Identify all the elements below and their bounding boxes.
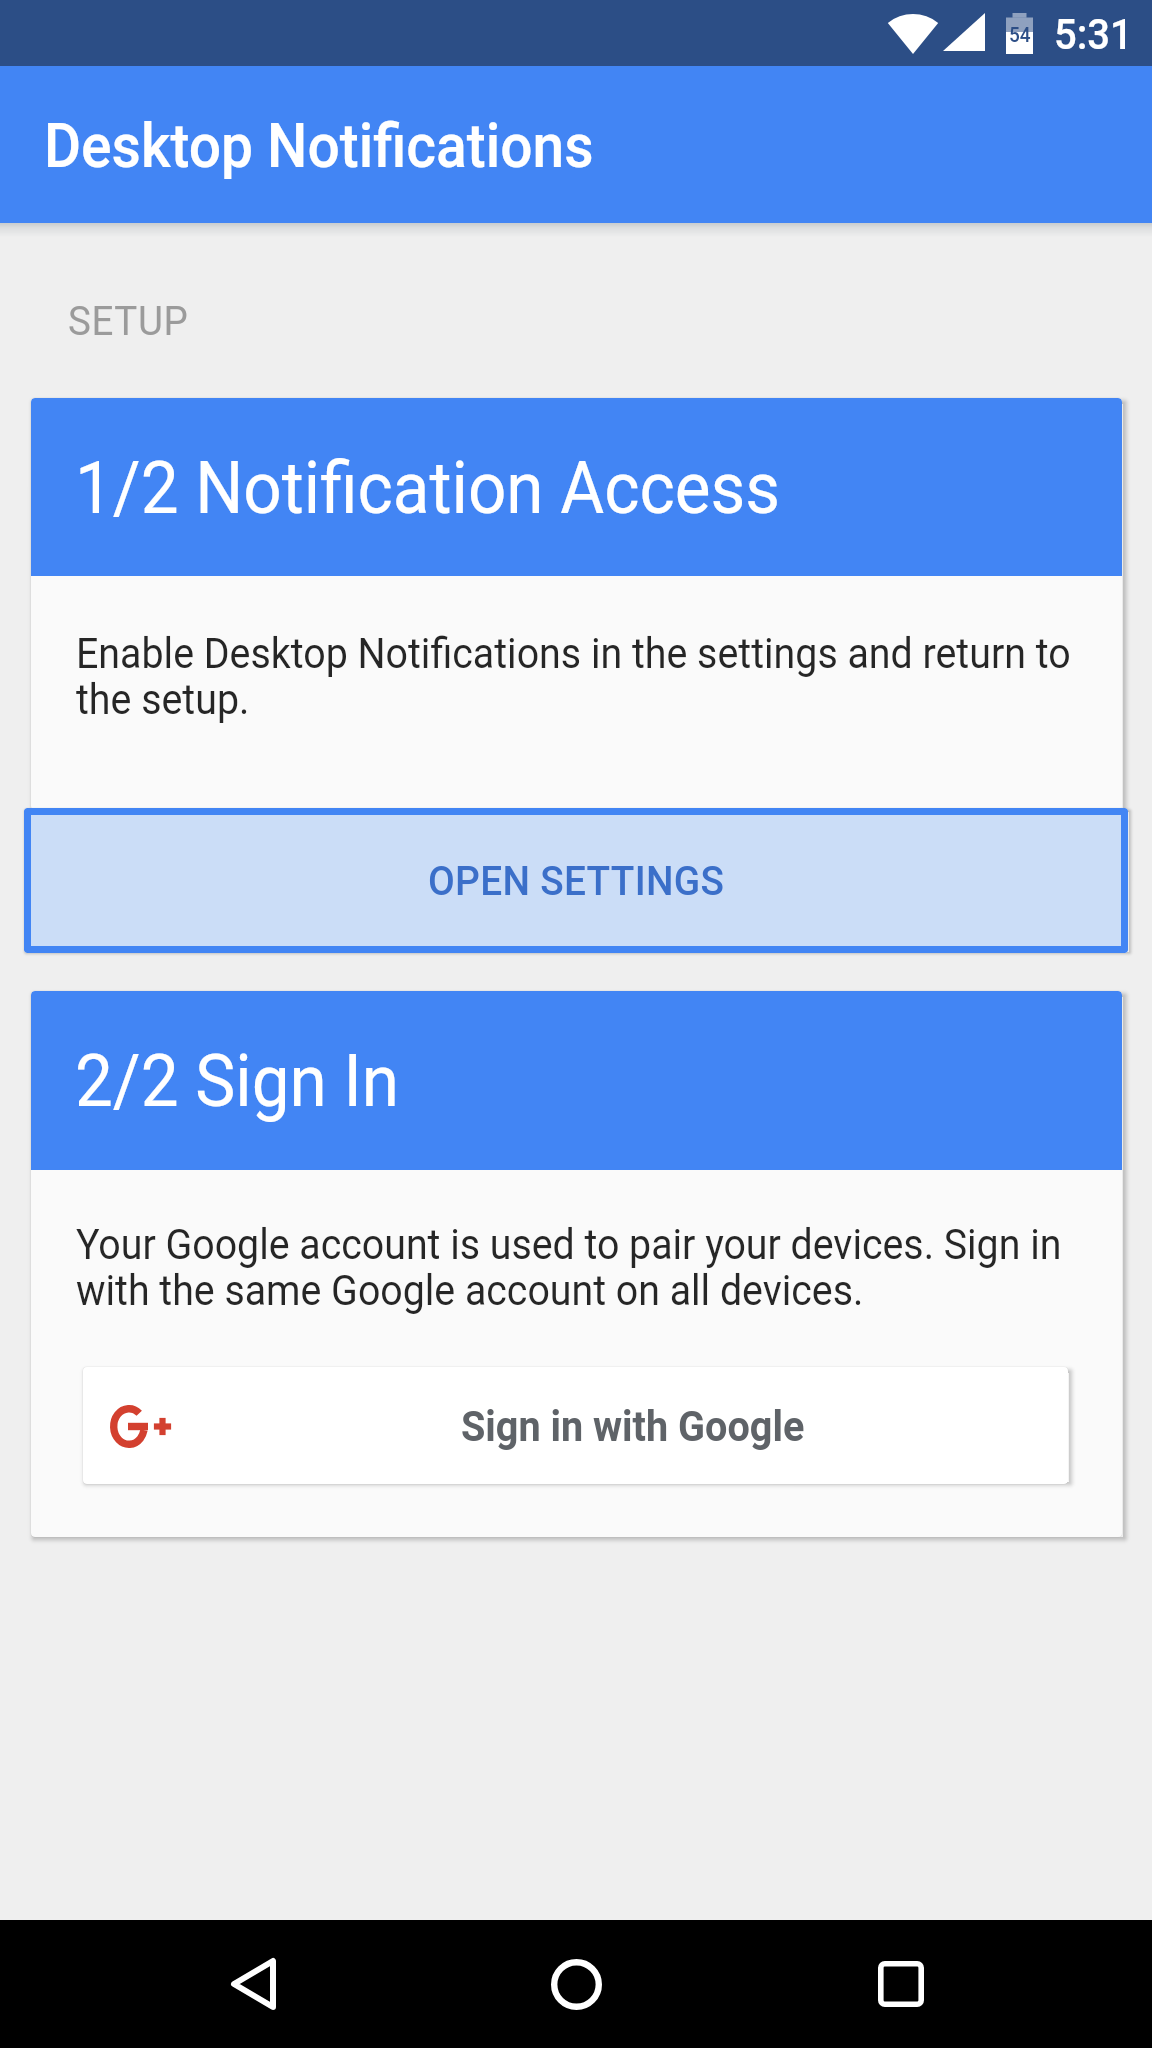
- button[interactable]: Home: [516, 1924, 636, 2044]
- staticText: 54: [1009, 23, 1031, 47]
- button[interactable]: Sign in with Google: [83, 1367, 1068, 1484]
- staticText: 2/2 Sign In: [75, 1038, 399, 1123]
- button[interactable]: Recent apps: [841, 1924, 961, 2044]
- staticText: Your Google account is used to pair your…: [76, 1223, 1102, 1315]
- staticText: SETUP: [68, 296, 189, 345]
- staticText: Sign in with Google: [461, 1401, 805, 1451]
- staticText: Enable Desktop Notifications in the sett…: [76, 632, 1102, 724]
- staticText: Desktop Notifications: [44, 111, 594, 182]
- button[interactable]: OPEN SETTINGS: [24, 808, 1128, 953]
- staticText: OPEN SETTINGS: [428, 856, 725, 905]
- staticText: 5:31: [1054, 9, 1133, 60]
- staticText: 1/2 Notification Access: [75, 445, 781, 530]
- button[interactable]: Back: [193, 1924, 313, 2044]
